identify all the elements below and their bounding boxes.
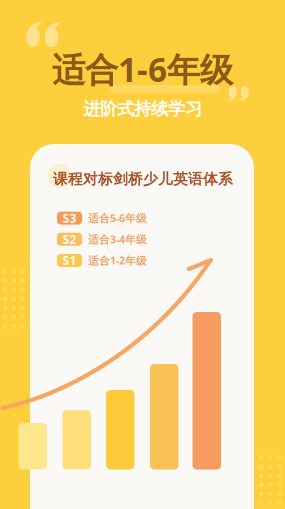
staticText: 适合3-4年级 xyxy=(88,232,147,246)
staticText: S1 xyxy=(62,252,76,268)
staticText: 课程对标剑桥少儿英语体系 xyxy=(53,170,233,188)
staticText: 进阶式持续学习 xyxy=(83,98,202,120)
staticText: S3 xyxy=(62,210,76,226)
staticText: 适合5-6年级 xyxy=(88,211,147,225)
staticText: 适合1-6年级 xyxy=(52,47,233,91)
staticText: 适合1-2年级 xyxy=(88,253,147,267)
staticText: S2 xyxy=(62,231,76,247)
